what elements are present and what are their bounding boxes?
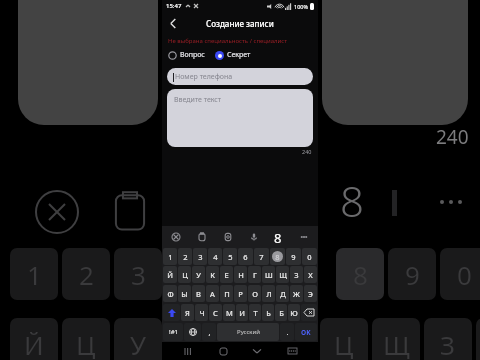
staticText: 240 — [436, 124, 469, 150]
button[interactable]: !#1 — [163, 323, 183, 341]
button[interactable]: 3 — [193, 248, 207, 265]
button[interactable]: О — [248, 285, 261, 302]
button[interactable]: Р — [234, 285, 247, 302]
staticText: . — [286, 327, 289, 337]
button[interactable]: Л — [262, 285, 275, 302]
staticText: И — [239, 308, 245, 318]
button[interactable]: Ш — [262, 266, 275, 283]
button[interactable]: Д — [276, 285, 289, 302]
button[interactable]: Ещё — [296, 229, 312, 245]
staticText: Б — [279, 308, 284, 318]
button[interactable]: Секрет — [215, 50, 251, 60]
staticText: 3 — [131, 257, 146, 292]
button[interactable]: Х — [304, 266, 317, 283]
staticText: 9 — [291, 252, 296, 262]
staticText: Х — [308, 270, 313, 280]
button[interactable]: Русский — [217, 323, 279, 341]
staticText: 15:47 — [166, 2, 182, 10]
button[interactable]: 1 — [163, 248, 177, 265]
staticText: Создание записи — [206, 18, 274, 29]
button[interactable]: Б — [275, 304, 287, 321]
staticText: Л — [266, 289, 272, 299]
button[interactable]: Э — [304, 285, 317, 302]
button[interactable]: 5 — [223, 248, 237, 265]
button[interactable]: Буфер обмена — [194, 229, 210, 245]
button[interactable]: Я — [181, 304, 194, 321]
staticText: 7 — [259, 252, 264, 262]
button[interactable]: , — [202, 323, 216, 341]
staticText: Секрет — [227, 50, 251, 60]
button[interactable]: 8 — [270, 248, 285, 265]
staticText: Ь — [266, 308, 271, 318]
staticText: 1 — [27, 257, 42, 292]
button[interactable]: Ю — [288, 304, 300, 321]
staticText: Д — [280, 289, 286, 299]
staticText: Т — [253, 308, 258, 318]
staticText: 0 — [307, 252, 312, 262]
button[interactable]: З — [290, 266, 303, 283]
button[interactable]: Вопрос — [168, 50, 209, 60]
button[interactable]: Й — [163, 266, 177, 283]
button[interactable]: 6 — [238, 248, 253, 265]
staticText: Ч — [199, 308, 205, 318]
staticText: Ц — [182, 270, 188, 280]
staticText: Щ — [383, 327, 410, 360]
button[interactable]: И — [236, 304, 248, 321]
button[interactable]: А — [206, 285, 219, 302]
button[interactable]: OK — [295, 323, 317, 341]
button[interactable]: Ы — [178, 285, 191, 302]
button[interactable]: Ц — [178, 266, 191, 283]
button[interactable]: Язык — [184, 323, 201, 341]
button[interactable]: Главная — [215, 343, 231, 359]
button[interactable]: 0 — [302, 248, 317, 265]
button[interactable]: С — [209, 304, 222, 321]
button[interactable]: Клавиатура — [284, 343, 300, 359]
button[interactable]: Эмодзи — [168, 229, 184, 245]
button[interactable]: Т — [249, 304, 261, 321]
staticText: Ю — [290, 308, 298, 318]
button[interactable]: Shift — [163, 304, 180, 321]
button[interactable]: К — [206, 266, 219, 283]
button[interactable]: 2 — [178, 248, 192, 265]
button[interactable]: 7 — [254, 248, 269, 265]
button[interactable]: П — [220, 285, 233, 302]
button[interactable]: Щ — [276, 266, 289, 283]
button[interactable]: Ж — [290, 285, 303, 302]
staticText: 8 — [340, 172, 364, 229]
staticText: 100% — [294, 3, 309, 10]
button[interactable]: 9 — [286, 248, 301, 265]
button[interactable]: Ф — [163, 285, 177, 302]
button[interactable]: Настройки — [220, 229, 236, 245]
button[interactable]: У — [192, 266, 205, 283]
staticText: Не выбрана специальность / специалист — [168, 37, 288, 45]
button[interactable]: Назад — [164, 14, 182, 32]
button[interactable]: Г — [248, 266, 261, 283]
staticText: 6 — [243, 252, 248, 262]
staticText: Е — [224, 270, 229, 280]
button[interactable]: Ч — [195, 304, 208, 321]
button[interactable]: Ь — [262, 304, 274, 321]
staticText: 8 — [274, 229, 282, 247]
staticText: , — [208, 327, 211, 337]
staticText: З — [294, 270, 299, 280]
staticText: 240 — [302, 148, 312, 155]
button[interactable]: Скрыть клавиатуру — [249, 343, 265, 359]
staticText: У — [196, 270, 201, 280]
button[interactable]: Голосовой ввод — [246, 229, 262, 245]
button[interactable]: Номер телефона — [167, 68, 313, 85]
button[interactable]: М — [223, 304, 235, 321]
button[interactable]: Е — [220, 266, 233, 283]
button[interactable]: Введите текст — [167, 89, 313, 147]
staticText: Номер телефона — [175, 72, 233, 82]
button[interactable]: . — [280, 323, 294, 341]
staticText: 5 — [228, 252, 233, 262]
staticText: 8 — [275, 252, 280, 262]
staticText: Введите текст — [174, 95, 222, 105]
button[interactable]: Недавние — [180, 343, 196, 359]
button[interactable]: Удалить — [301, 304, 317, 321]
staticText: 1 — [168, 252, 173, 262]
staticText: Й — [24, 327, 44, 360]
button[interactable]: Н — [234, 266, 247, 283]
button[interactable]: 4 — [208, 248, 222, 265]
button[interactable]: В — [192, 285, 205, 302]
